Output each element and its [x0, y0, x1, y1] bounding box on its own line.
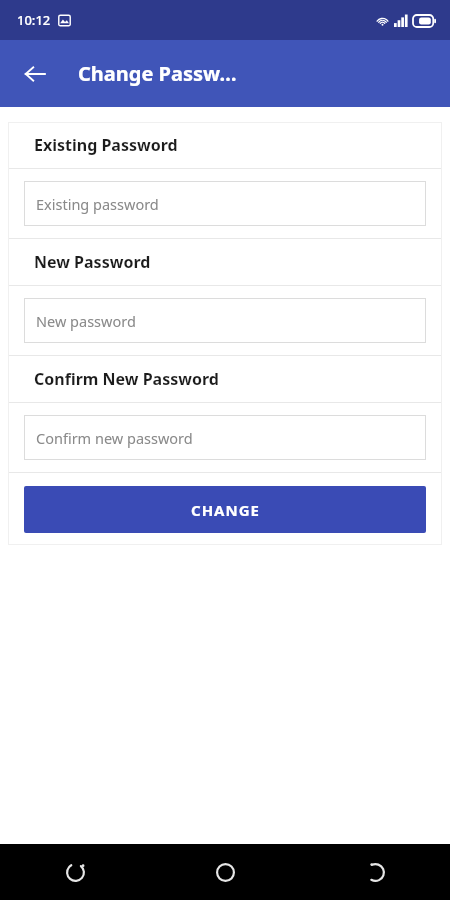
- staticText: New password: [36, 311, 136, 331]
- staticText: Existing Password: [34, 134, 178, 156]
- staticText: Confirm New Password: [34, 368, 219, 390]
- staticText: Confirm new password: [36, 428, 193, 448]
- button[interactable]: Home: [197, 844, 253, 900]
- button[interactable]: CHANGE: [24, 486, 426, 533]
- staticText: Change Passw…: [78, 60, 237, 87]
- button[interactable]: Confirm new password: [24, 415, 426, 460]
- button[interactable]: Back: [12, 51, 58, 97]
- button[interactable]: Existing password: [24, 181, 426, 226]
- staticText: 10:12: [17, 11, 51, 29]
- button[interactable]: Back: [347, 844, 403, 900]
- button[interactable]: New password: [24, 298, 426, 343]
- button[interactable]: Recent apps: [47, 844, 103, 900]
- staticText: CHANGE: [191, 500, 260, 520]
- staticText: Existing password: [36, 194, 159, 214]
- staticText: New Password: [34, 251, 151, 273]
